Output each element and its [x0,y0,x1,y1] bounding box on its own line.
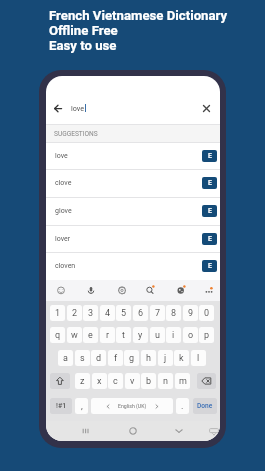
button[interactable]: u [150,327,165,343]
staticText: SUGGESTIONS [54,130,98,138]
staticText: b [146,376,152,387]
button[interactable]: 3 [83,305,98,321]
button[interactable]: , [75,398,88,414]
button[interactable]: 1 [50,305,65,321]
button[interactable]: m [175,373,190,389]
button[interactable]: h [141,350,156,366]
button[interactable]: c [108,373,123,389]
button[interactable]: 7 [150,305,165,321]
button[interactable]: clove [46,169,220,197]
button[interactable]: Back [48,92,68,124]
button[interactable]: Emoji [53,282,69,298]
button[interactable]: n [158,373,173,389]
button[interactable]: Voice input [83,282,99,298]
button[interactable]: g [124,350,139,366]
button[interactable]: 4 [100,305,115,321]
button[interactable]: 5 [116,305,131,321]
button[interactable]: 2 [67,305,82,321]
button[interactable]: t [116,327,131,343]
button[interactable]: 0 [199,305,214,321]
button[interactable]: y [133,327,148,343]
button[interactable]: j [158,350,173,366]
staticText: Easy to use [49,38,117,53]
staticText: Offline Free [49,23,118,38]
staticText: o [188,330,194,341]
staticText: m [179,376,187,387]
staticText: d [96,353,102,364]
button[interactable]: Settings [114,282,130,298]
staticText: f [114,353,118,364]
staticText: 0 [204,308,210,319]
staticText: k [179,353,184,364]
staticText: cloven [55,262,76,270]
button[interactable]: !#1 [50,398,72,414]
staticText: clove [55,179,72,187]
button[interactable]: v [125,373,140,389]
button[interactable]: o [183,327,198,343]
staticText: , [81,401,83,412]
button[interactable]: Back [171,421,187,441]
button[interactable]: z [75,373,90,389]
button[interactable]: Clear text [196,92,216,124]
staticText: j [164,353,167,364]
staticText: q [55,330,61,341]
staticText: love [71,104,85,112]
staticText: 7 [155,308,161,319]
staticText: E [208,152,212,160]
staticText: 1 [55,308,61,319]
staticText: !#1 [56,402,67,410]
button[interactable]: . [176,398,189,414]
staticText: 6 [138,308,144,319]
button[interactable]: 8 [166,305,181,321]
button[interactable]: q [50,327,65,343]
button[interactable]: a [58,350,73,366]
staticText: English (UK) [118,403,147,409]
button[interactable]: k [174,350,189,366]
button[interactable]: Stickers [173,282,189,298]
button[interactable]: l [191,350,206,366]
button[interactable]: cloven [46,252,220,280]
staticText: r [106,330,110,341]
button[interactable]: lover [46,225,220,253]
button[interactable]: Done [193,398,217,414]
button[interactable]: e [83,327,98,343]
button[interactable]: f [108,350,123,366]
button[interactable]: Shift [50,373,70,389]
button[interactable]: r [100,327,115,343]
staticText: x [97,376,102,387]
staticText: 9 [188,308,194,319]
button[interactable]: More options [201,282,217,298]
button[interactable]: b [141,373,156,389]
staticText: e [88,330,93,341]
staticText: y [138,330,143,341]
staticText: E [208,235,212,243]
button[interactable]: love [46,142,220,170]
staticText: love [55,152,68,160]
button[interactable]: s [75,350,90,366]
button[interactable]: d [91,350,106,366]
staticText: w [71,330,78,341]
button[interactable]: English (UK) [91,398,173,414]
button[interactable]: 6 [133,305,148,321]
staticText: 3 [88,308,94,319]
button[interactable]: w [67,327,82,343]
staticText: E [208,207,212,215]
staticText: z [80,376,85,387]
button[interactable]: x [92,373,107,389]
button[interactable]: p [199,327,214,343]
button[interactable]: glove [46,197,220,225]
staticText: lover [55,235,71,243]
staticText: Done [197,402,213,410]
button[interactable]: Search [142,282,158,298]
staticText: c [113,376,118,387]
button[interactable]: Recents [77,421,93,441]
staticText: a [63,353,68,364]
button[interactable]: 9 [183,305,198,321]
staticText: v [130,376,135,387]
button[interactable]: Hide keyboard [206,421,220,441]
staticText: E [208,262,212,270]
button[interactable]: i [166,327,181,343]
button[interactable]: Backspace [197,373,216,389]
staticText: 8 [171,308,177,319]
button[interactable]: Home [125,421,141,441]
